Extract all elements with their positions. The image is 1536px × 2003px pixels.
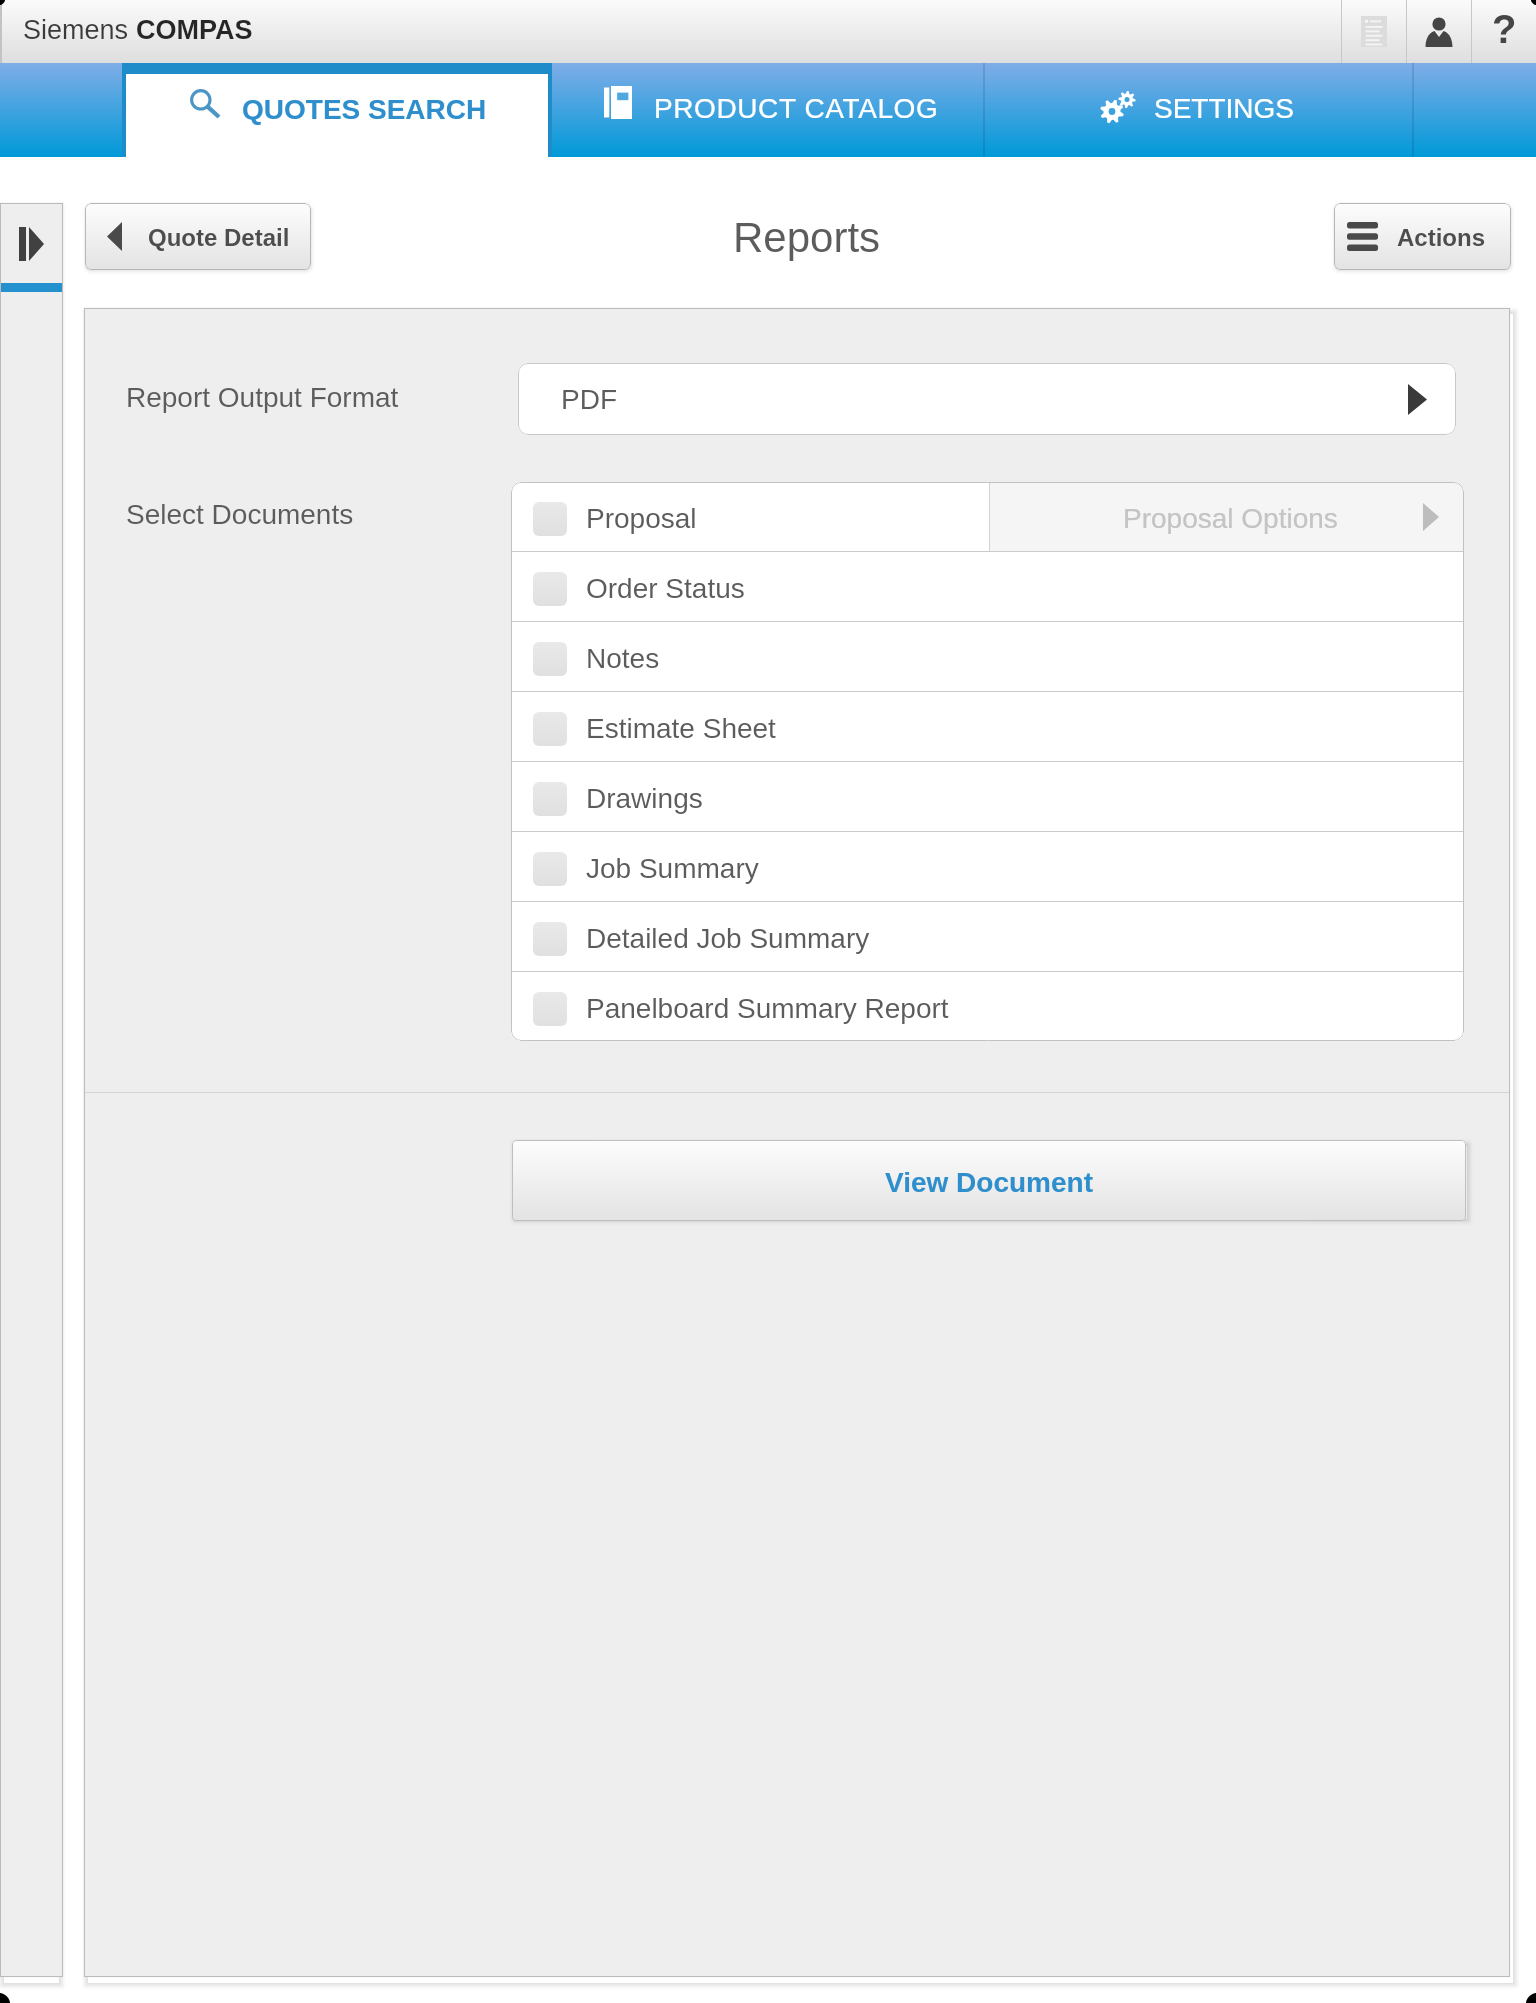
- button[interactable]: Quote Detail: [85, 203, 311, 270]
- staticText: Detailed Job Summary: [586, 923, 870, 954]
- button[interactable]: Actions: [1334, 203, 1511, 270]
- staticText: Panelboard Summary Report: [586, 993, 949, 1024]
- staticText: Drawings: [586, 783, 703, 814]
- button[interactable]: Detailed Job Summary: [511, 902, 1464, 971]
- staticText: COMPAS: [136, 15, 253, 45]
- staticText: View Document: [885, 1167, 1093, 1198]
- button[interactable]: PDF: [518, 363, 1456, 435]
- button[interactable]: Notes: [511, 622, 1464, 691]
- button[interactable]: Drawings: [511, 762, 1464, 831]
- staticText: Quote Detail: [148, 224, 290, 251]
- button[interactable]: Panelboard Summary Report: [511, 972, 1464, 1041]
- staticText: Job Summary: [586, 853, 759, 884]
- button[interactable]: Expand navigation: [0, 203, 63, 284]
- button[interactable]: Estimate Sheet: [511, 692, 1464, 761]
- staticText: Reports: [733, 214, 881, 261]
- staticText: ?: [1492, 7, 1517, 52]
- button[interactable]: QUOTES SEARCH: [126, 74, 548, 157]
- staticText: Select Documents: [126, 499, 354, 530]
- staticText: PRODUCT CATALOG: [654, 93, 939, 124]
- staticText: Estimate Sheet: [586, 713, 776, 744]
- button[interactable]: Job Summary: [511, 832, 1464, 901]
- button[interactable]: Documents: [1342, 0, 1406, 63]
- button[interactable]: View Document: [512, 1140, 1466, 1221]
- staticText: QUOTES SEARCH: [242, 94, 487, 125]
- staticText: Siemens: [23, 15, 136, 45]
- button[interactable]: Proposal Options: [990, 482, 1464, 551]
- staticText: Order Status: [586, 573, 745, 604]
- staticText: SETTINGS: [1154, 93, 1295, 124]
- button[interactable]: Account: [1407, 0, 1471, 63]
- button[interactable]: Order Status: [511, 552, 1464, 621]
- button[interactable]: PRODUCT CATALOG: [551, 63, 983, 157]
- button[interactable]: Help: [1472, 0, 1536, 63]
- button[interactable]: SETTINGS: [985, 63, 1412, 157]
- staticText: Notes: [586, 643, 660, 674]
- staticText: Report Output Format: [126, 382, 399, 413]
- staticText: Proposal: [586, 503, 697, 534]
- button[interactable]: Proposal: [511, 482, 989, 551]
- staticText: Actions: [1397, 224, 1486, 251]
- staticText: PDF: [561, 384, 617, 415]
- staticText: Proposal Options: [1123, 503, 1338, 534]
